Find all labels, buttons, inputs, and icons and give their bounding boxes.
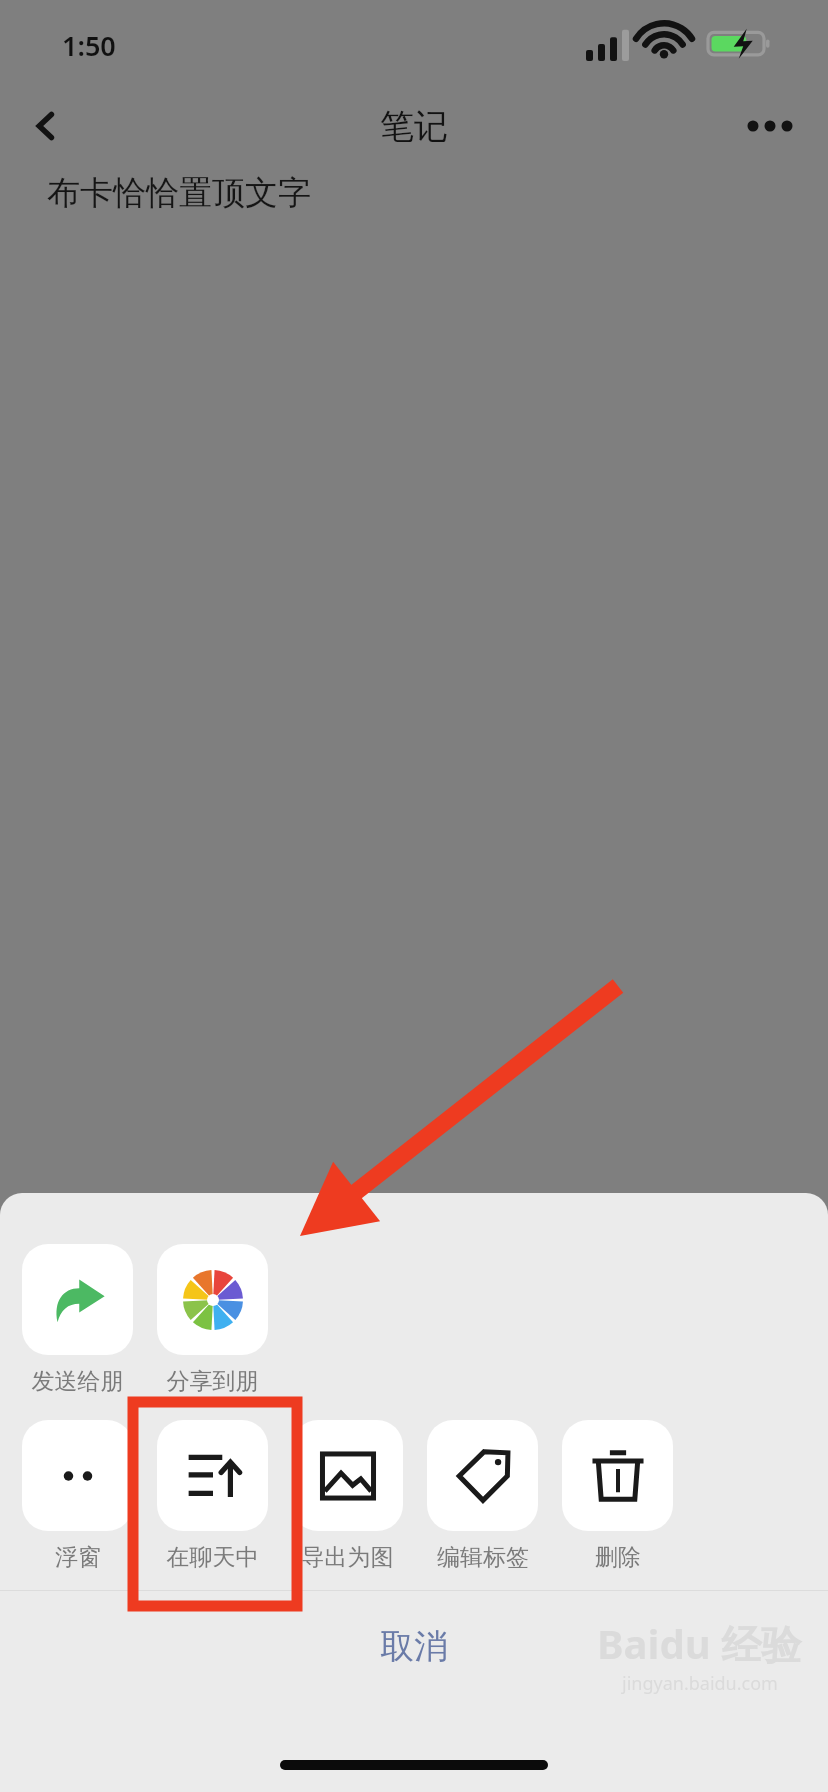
button[interactable]: 分享到朋友圈 bbox=[157, 1244, 268, 1396]
button[interactable]: 删除 bbox=[562, 1420, 673, 1572]
staticText: 导出为图片 bbox=[292, 1543, 403, 1572]
staticText: Baidu 经验 bbox=[597, 1616, 802, 1671]
button[interactable]: 浮窗 bbox=[22, 1420, 133, 1572]
button[interactable]: 发送给朋友 bbox=[22, 1244, 133, 1396]
staticText: 笔记 bbox=[380, 105, 448, 148]
staticText: 发送给朋友 bbox=[22, 1367, 133, 1396]
staticText: 编辑标签 bbox=[437, 1543, 529, 1572]
staticText: jingyan.baidu.com bbox=[622, 1671, 778, 1696]
staticText: 取消 bbox=[380, 1625, 448, 1668]
button[interactable]: Back bbox=[14, 94, 78, 158]
staticText: 在聊天中置顶 bbox=[157, 1543, 268, 1572]
button[interactable]: More options bbox=[738, 94, 802, 158]
button[interactable]: 导出为图片 bbox=[292, 1420, 403, 1572]
button[interactable]: 编辑标签 bbox=[427, 1420, 538, 1572]
button[interactable]: 在聊天中置顶 bbox=[157, 1420, 268, 1572]
staticText: 分享到朋友圈 bbox=[157, 1367, 268, 1396]
staticText: 浮窗 bbox=[55, 1543, 101, 1572]
staticText: 删除 bbox=[595, 1543, 641, 1572]
staticText: 1:50 bbox=[62, 27, 116, 64]
button[interactable]: 取消 bbox=[0, 1591, 828, 1701]
staticText: 布卡恰恰置顶文字 bbox=[47, 172, 311, 214]
